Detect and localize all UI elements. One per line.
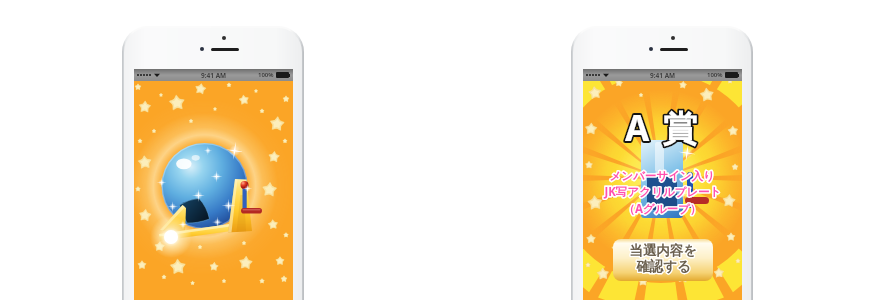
- staticText: 100%: [258, 71, 274, 79]
- staticText: 9:41 AM: [201, 71, 227, 80]
- button[interactable]: [613, 239, 713, 281]
- staticText: 9:41 AM: [650, 71, 676, 80]
- staticText: 100%: [707, 71, 723, 79]
